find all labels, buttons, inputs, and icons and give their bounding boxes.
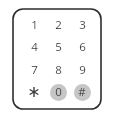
staticText: 6 (79, 39, 86, 55)
button[interactable]: 1 (22, 14, 46, 36)
button[interactable]: 3 (70, 14, 94, 36)
staticText: 8 (55, 62, 62, 78)
button[interactable]: 4 (22, 36, 46, 58)
staticText: 7 (31, 62, 38, 78)
button[interactable]: 7 (22, 59, 46, 81)
button[interactable]: 8 (46, 59, 70, 81)
staticText: 4 (31, 39, 38, 55)
button[interactable]: Star key (22, 81, 46, 103)
staticText: 0 (55, 84, 62, 100)
staticText: 1 (31, 17, 38, 33)
button[interactable]: 9 (70, 59, 94, 81)
button[interactable]: # (70, 81, 94, 103)
staticText: 5 (55, 39, 62, 55)
staticText: 2 (55, 17, 62, 33)
button[interactable]: 6 (70, 36, 94, 58)
button[interactable]: 0 (46, 81, 70, 103)
staticText: 3 (79, 17, 86, 33)
button[interactable]: 5 (46, 36, 70, 58)
staticText: # (78, 84, 86, 100)
staticText: 9 (79, 62, 86, 78)
button[interactable]: 2 (46, 14, 70, 36)
